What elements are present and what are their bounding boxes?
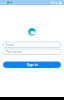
staticText: Password: [5, 50, 21, 54]
staticText: ıll ≈ ▮: [51, 0, 61, 5]
staticText: Sign In: [26, 63, 37, 67]
staticText: Email: [5, 43, 14, 47]
button[interactable]: Sign In: [3, 61, 61, 68]
